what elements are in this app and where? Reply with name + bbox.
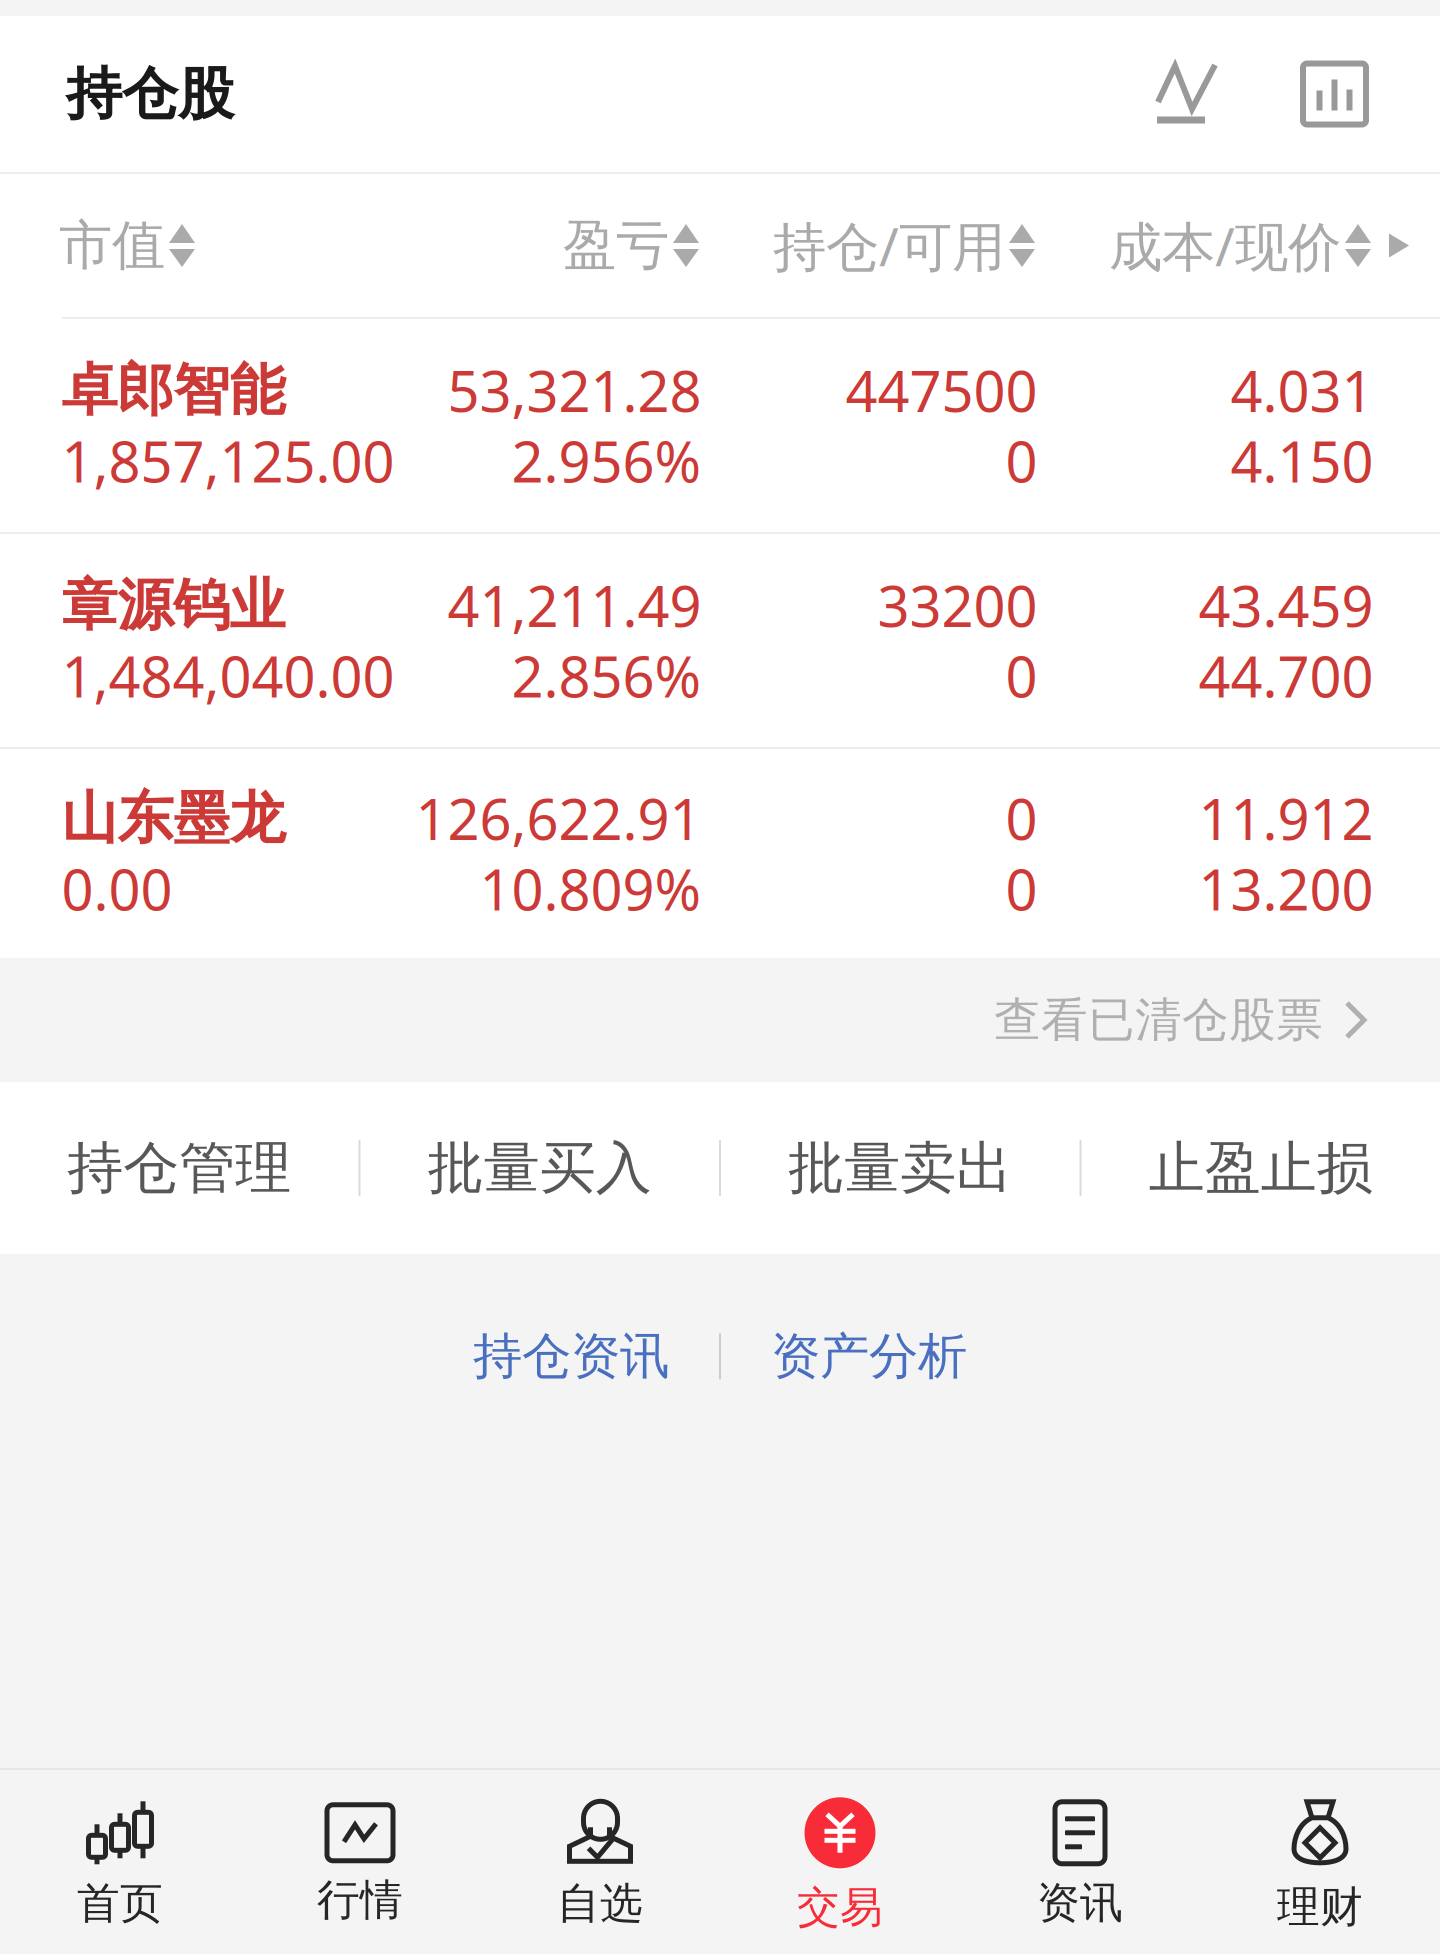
staticText: 交易 <box>797 1881 883 1934</box>
staticText: 卓郎智能 <box>61 356 285 425</box>
button[interactable]: 交易 <box>720 1790 960 1934</box>
staticText: 持仓股 <box>66 60 234 128</box>
button[interactable]: 查看已清仓股票 <box>0 958 1440 1082</box>
button[interactable]: 批量买入 <box>360 1082 719 1254</box>
staticText: 0 <box>1005 781 1037 855</box>
staticText: 查看已清仓股票 <box>994 991 1323 1049</box>
staticText: 126,622.91 <box>415 781 701 855</box>
button[interactable]: 资讯 <box>960 1795 1200 1929</box>
staticText: 市值 <box>59 213 165 278</box>
staticText: 10.809% <box>479 851 701 926</box>
button[interactable]: 山东墨龙 <box>0 749 1440 958</box>
button[interactable]: 批量卖出 <box>721 1082 1079 1254</box>
button[interactable]: 止盈止损 <box>1081 1082 1440 1254</box>
staticText: 41,211.49 <box>447 568 701 642</box>
staticText: 批量买入 <box>428 1134 652 1202</box>
button[interactable]: 理财 <box>1200 1791 1440 1933</box>
staticText: 0 <box>1005 638 1037 713</box>
button[interactable]: 行情 <box>240 1798 480 1926</box>
button[interactable]: Trend chart <box>1155 62 1303 126</box>
staticText: 43.459 <box>1198 568 1373 642</box>
button[interactable]: 章源钨业 <box>0 534 1440 747</box>
staticText: 0 <box>1005 851 1037 926</box>
staticText: 成本/现价 <box>1109 210 1341 281</box>
button[interactable]: 持仓管理 <box>0 1082 358 1254</box>
staticText: 首页 <box>77 1877 163 1930</box>
button[interactable]: 资产分析 <box>721 1308 1017 1405</box>
staticText: 44.700 <box>1198 638 1373 713</box>
staticText: 理财 <box>1277 1881 1363 1933</box>
staticText: 持仓管理 <box>67 1134 291 1202</box>
button[interactable]: 自选 <box>480 1794 720 1930</box>
button[interactable]: 卓郎智能 <box>0 319 1440 532</box>
staticText: 447500 <box>845 353 1037 427</box>
staticText: 2.856% <box>511 638 701 713</box>
staticText: 0.00 <box>61 851 172 926</box>
staticText: 止盈止损 <box>1149 1134 1373 1202</box>
staticText: 1,484,040.00 <box>61 638 394 713</box>
staticText: 章源钨业 <box>61 571 285 640</box>
staticText: 持仓资讯 <box>473 1326 669 1387</box>
staticText: 0 <box>1005 423 1037 498</box>
staticText: 4.031 <box>1230 353 1373 427</box>
staticText: 资讯 <box>1037 1877 1123 1929</box>
staticText: 2.956% <box>511 423 701 498</box>
staticText: 13.200 <box>1198 851 1373 926</box>
staticText: 自选 <box>557 1877 643 1930</box>
staticText: 33200 <box>877 568 1037 642</box>
staticText: 行情 <box>317 1874 403 1926</box>
staticText: 山东墨龙 <box>61 784 285 853</box>
button[interactable]: 持仓资讯 <box>423 1308 719 1405</box>
staticText: 批量卖出 <box>788 1134 1012 1202</box>
staticText: 1,857,125.00 <box>61 423 394 498</box>
staticText: 11.912 <box>1198 781 1373 855</box>
button[interactable]: 首页 <box>0 1794 240 1930</box>
staticText: 4.150 <box>1230 423 1373 498</box>
staticText: 53,321.28 <box>447 353 701 427</box>
staticText: 资产分析 <box>771 1326 967 1387</box>
staticText: 持仓/可用 <box>773 210 1005 281</box>
button[interactable]: Bar chart <box>1303 63 1366 124</box>
staticText: 盈亏 <box>563 213 669 278</box>
